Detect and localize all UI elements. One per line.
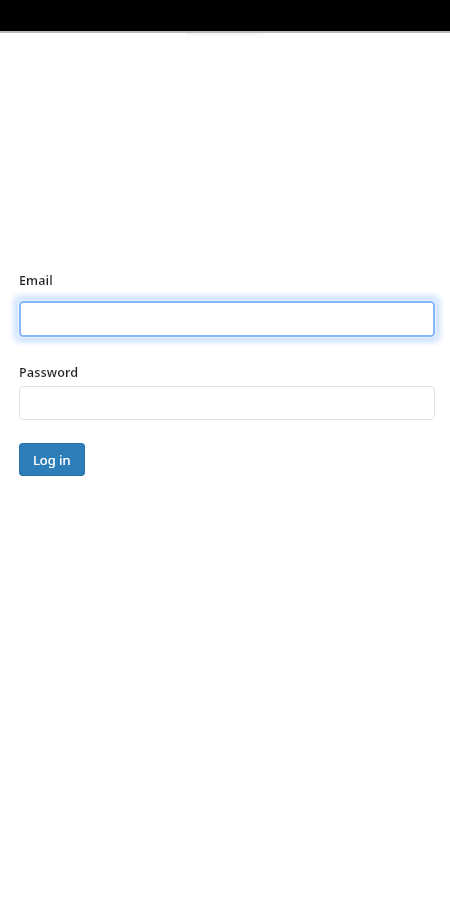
button[interactable]: Email input: [19, 301, 435, 337]
staticText: Email: [19, 272, 53, 289]
staticText: Password: [19, 364, 79, 381]
button[interactable]: Log in: [19, 443, 85, 476]
button[interactable]: Password input: [19, 386, 435, 420]
staticText: Log in: [33, 451, 71, 469]
